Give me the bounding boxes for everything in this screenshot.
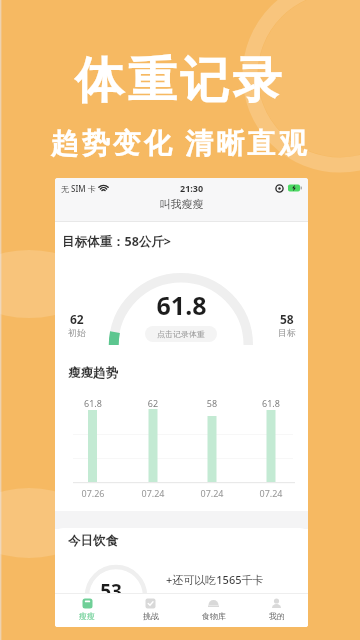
button[interactable]: 点击记录体重 — [145, 326, 217, 342]
staticText: 今日饮食 — [68, 533, 118, 549]
staticText: 07.24 — [251, 487, 291, 499]
staticText: 目标 — [278, 327, 296, 338]
staticText: 我的 — [269, 611, 285, 621]
staticText: 62 — [133, 397, 173, 409]
staticText: 趋势变化 清晰直观 — [0, 123, 360, 161]
staticText: 叫我瘦瘦 — [55, 197, 308, 211]
button[interactable]: 食物库 — [182, 593, 245, 627]
staticText: 瘦瘦趋势 — [68, 365, 118, 381]
staticText: 挑战 — [143, 611, 159, 621]
staticText: 58 — [192, 397, 232, 409]
staticText: 无 SIM 卡 — [61, 183, 96, 194]
staticText: 61.8 — [73, 397, 113, 409]
staticText: 食物库 — [202, 611, 226, 621]
staticText: 07.24 — [192, 487, 232, 499]
staticText: 瘦瘦 — [79, 611, 95, 621]
staticText: 07.24 — [133, 487, 173, 499]
staticText: 21:30 — [180, 182, 204, 194]
staticText: 初始 — [68, 327, 86, 338]
staticText: 53 — [89, 578, 133, 604]
staticText: 点击记录体重 — [157, 329, 205, 339]
staticText: 体重记录 — [0, 50, 360, 112]
button[interactable]: 目标体重：58公斤> — [62, 233, 171, 250]
staticText: 58 — [280, 311, 294, 327]
button[interactable]: 我的 — [245, 593, 308, 627]
staticText: 61.8 — [251, 397, 291, 409]
staticText: 62 — [70, 311, 84, 327]
button[interactable]: 挑战 — [119, 593, 182, 627]
button[interactable]: 瘦瘦 — [55, 593, 119, 627]
staticText: +还可以吃1565千卡 — [166, 572, 264, 587]
staticText: 07.26 — [73, 487, 113, 499]
staticText: 61.8 — [55, 288, 308, 322]
